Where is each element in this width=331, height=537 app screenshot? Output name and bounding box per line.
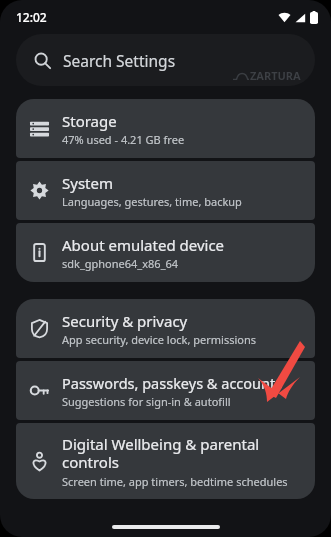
staticText: 47% used - 4.21 GB free bbox=[62, 132, 185, 147]
staticText: Search Settings bbox=[63, 50, 176, 71]
staticText: Screen time, app timers, bedtime schedul… bbox=[62, 474, 288, 489]
staticText: Suggestions for sign-in & autofill bbox=[62, 394, 231, 409]
staticText: Passwords, passkeys & accounts bbox=[62, 373, 283, 393]
staticText: System bbox=[62, 173, 113, 193]
staticText: Storage bbox=[62, 111, 117, 131]
button[interactable]: Search Settings bbox=[16, 34, 315, 86]
button[interactable]: Security & privacy bbox=[16, 299, 315, 358]
button[interactable]: About emulated device bbox=[16, 223, 315, 282]
button[interactable]: System bbox=[16, 161, 315, 220]
staticText: sdk_gphone64_x86_64 bbox=[62, 256, 179, 271]
staticText: 12:02 bbox=[16, 9, 47, 25]
button[interactable]: Passwords, passkeys & accounts bbox=[16, 361, 315, 420]
staticText: ZARTURA bbox=[250, 68, 301, 83]
staticText: Languages, gestures, time, backup bbox=[62, 194, 242, 209]
staticText: About emulated device bbox=[62, 235, 225, 255]
button[interactable]: Digital Wellbeing & parental controls bbox=[16, 423, 315, 499]
staticText: App security, device lock, permissions bbox=[62, 332, 257, 347]
staticText: Security & privacy bbox=[62, 311, 188, 331]
staticText: Digital Wellbeing & parental controls bbox=[62, 434, 305, 473]
button[interactable]: Storage bbox=[16, 99, 315, 158]
